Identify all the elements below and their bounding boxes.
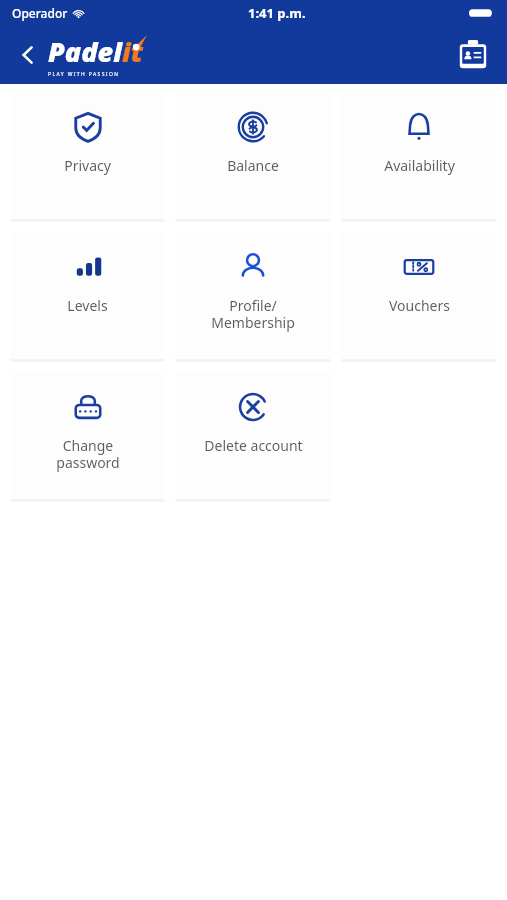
button[interactable]: Profile/ Membership [175, 232, 331, 362]
button[interactable]: Back [10, 37, 46, 73]
staticText: Profile/ Membership [211, 296, 295, 332]
staticText: Availability [384, 156, 455, 175]
staticText: 1:41 p.m. [248, 4, 306, 22]
staticText: PLAY WITH PASSION [48, 71, 120, 78]
button[interactable]: Privacy [10, 92, 165, 222]
staticText: Delete account [204, 436, 303, 455]
staticText: Operador [12, 5, 68, 21]
button[interactable]: Change password [10, 372, 165, 502]
staticText: Balance [227, 156, 279, 175]
staticText: it [122, 33, 144, 70]
staticText: Vouchers [389, 296, 450, 315]
button[interactable]: Balance [175, 92, 331, 222]
button[interactable]: Profile card [453, 35, 493, 75]
staticText: Change password [56, 436, 120, 472]
staticText: Levels [67, 296, 108, 315]
button[interactable]: Delete account [175, 372, 331, 502]
staticText: Padel [48, 33, 122, 70]
staticText: Privacy [64, 156, 111, 175]
button[interactable]: Availability [341, 92, 497, 222]
button[interactable]: Levels [10, 232, 165, 362]
button[interactable]: Vouchers [341, 232, 497, 362]
